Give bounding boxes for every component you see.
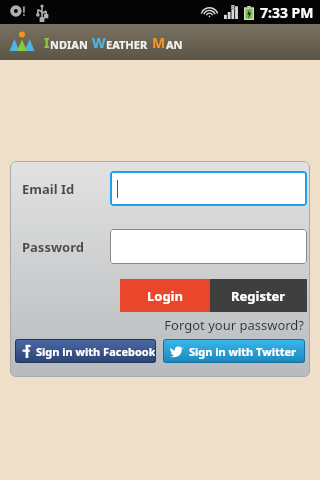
staticText: R bbox=[231, 3, 235, 11]
button[interactable]: Forgot your password? bbox=[164, 316, 304, 334]
button[interactable]: Sign in with Facebook bbox=[15, 339, 156, 363]
staticText: I bbox=[44, 33, 50, 52]
button[interactable] bbox=[110, 171, 307, 206]
staticText: EATHER bbox=[106, 37, 148, 52]
button[interactable]: Login bbox=[120, 279, 210, 312]
staticText: Password bbox=[22, 238, 110, 256]
button[interactable]: Sign in with Twitter bbox=[163, 339, 305, 363]
staticText: AN bbox=[166, 37, 183, 52]
staticText: M bbox=[152, 33, 166, 52]
button[interactable] bbox=[110, 229, 307, 264]
staticText: Sign in with Twitter bbox=[189, 344, 296, 359]
staticText: W bbox=[92, 33, 106, 52]
staticText: Forgot your password? bbox=[164, 316, 304, 334]
staticText: Sign in with Facebook bbox=[36, 344, 156, 359]
button[interactable]: Register bbox=[210, 279, 307, 312]
staticText: NDIAN bbox=[50, 37, 88, 52]
staticText: Login bbox=[147, 287, 183, 305]
staticText: 7:33 PM bbox=[260, 3, 314, 22]
staticText: Email Id bbox=[22, 180, 110, 198]
staticText: Register bbox=[231, 287, 286, 305]
